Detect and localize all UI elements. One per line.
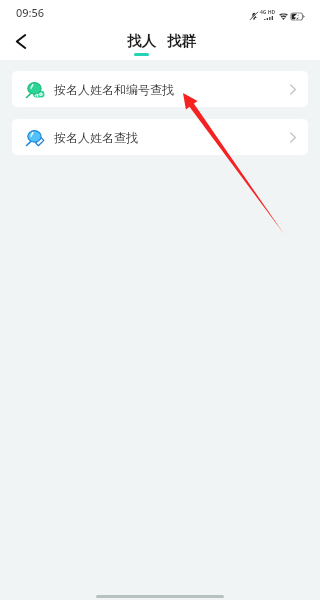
button[interactable]: 按名人姓名查找 xyxy=(12,119,308,155)
staticText: 4G HD xyxy=(260,9,276,16)
staticText: 按名人姓名和编号查找 xyxy=(54,82,174,97)
staticText: 09:56 xyxy=(16,5,45,20)
staticText: 找人 xyxy=(127,32,156,50)
staticText: 找群 xyxy=(167,32,196,50)
button[interactable]: 按名人姓名和编号查找 xyxy=(12,71,308,107)
button[interactable]: 找人 xyxy=(125,32,158,56)
staticText: 按名人姓名查找 xyxy=(54,130,138,145)
button[interactable]: 找群 xyxy=(165,32,198,56)
button[interactable]: Back xyxy=(2,24,40,59)
